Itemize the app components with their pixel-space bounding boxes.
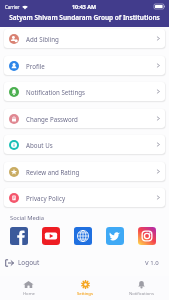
button[interactable]: Twitter <box>106 227 124 245</box>
staticText: 10:43 AM <box>72 3 97 10</box>
staticText: Social Media <box>10 214 45 222</box>
staticText: Notification Settings <box>26 88 85 96</box>
button[interactable]: Review and Rating <box>4 162 165 181</box>
button[interactable]: Facebook <box>10 227 28 245</box>
button[interactable]: Website <box>74 227 92 245</box>
staticText: Review and Rating <box>26 168 80 176</box>
button[interactable]: Profile <box>4 56 165 75</box>
button[interactable]: Logout <box>5 258 40 267</box>
button[interactable]: Notification Settings <box>4 82 165 101</box>
staticText: Home <box>23 291 35 297</box>
staticText: Settings <box>77 291 93 297</box>
staticText: Carrier <box>5 4 20 10</box>
button[interactable]: Settings <box>57 276 113 300</box>
button[interactable]: Privacy Policy <box>4 188 165 207</box>
button[interactable]: Add Sibling <box>4 29 165 48</box>
button[interactable]: Notifications <box>113 276 169 300</box>
staticText: Profile <box>26 62 45 70</box>
staticText: Notifications <box>129 291 154 297</box>
button[interactable]: YouTube <box>42 227 60 245</box>
staticText: Logout <box>18 258 40 267</box>
staticText: Add Sibling <box>26 35 59 43</box>
staticText: Privacy Policy <box>26 194 66 202</box>
button[interactable]: Instagram <box>138 227 156 245</box>
button[interactable]: About Us <box>4 135 165 154</box>
staticText: Satyam Shivam Sundaram Group of Institut… <box>0 13 169 22</box>
button[interactable]: Home <box>0 276 57 300</box>
button[interactable]: Change Password <box>4 109 165 128</box>
staticText: About Us <box>26 141 53 149</box>
staticText: Change Password <box>26 115 78 123</box>
staticText: V 1.0 <box>145 259 159 267</box>
